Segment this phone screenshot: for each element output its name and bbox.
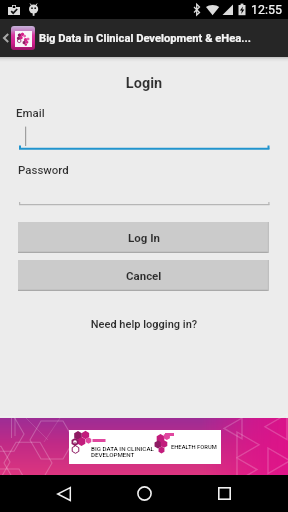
staticText: Log In [128, 231, 160, 244]
staticText: 12:55 [251, 2, 282, 17]
staticText: EHEALTH FORUM [171, 444, 217, 451]
staticText: Cancel [126, 269, 162, 282]
staticText: BIG DATA IN CLINICAL [91, 445, 154, 452]
button[interactable]: Home [120, 475, 168, 512]
staticText: Login [0, 75, 288, 92]
button[interactable]: Recent apps [200, 475, 248, 512]
staticText: DEVELOPMENT [91, 451, 135, 458]
button[interactable]: Log In [18, 222, 269, 253]
button[interactable] [0, 197, 288, 217]
staticText: Email [16, 106, 45, 119]
button[interactable]: Cancel [18, 260, 269, 291]
button[interactable]: Back [40, 475, 88, 512]
button[interactable]: Need help logging in? [0, 318, 288, 331]
staticText: Password [18, 163, 69, 176]
button[interactable]: Navigate up [0, 19, 11, 57]
staticText: Big Data in Clinical Development & eHea.… [39, 32, 251, 45]
button[interactable] [0, 117, 288, 151]
button[interactable]: Advertisement banner [0, 418, 288, 475]
